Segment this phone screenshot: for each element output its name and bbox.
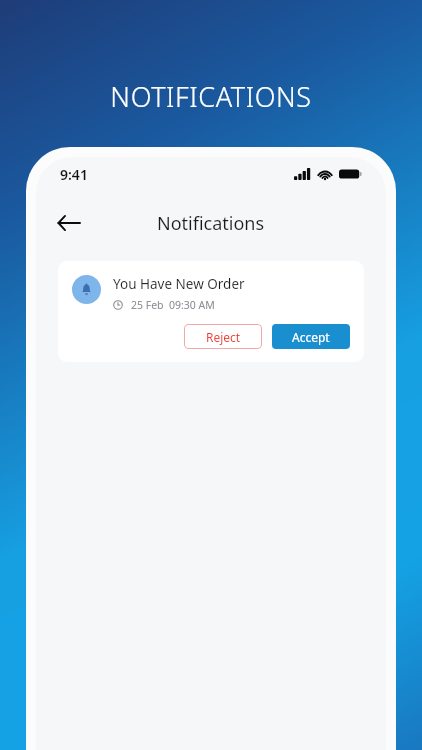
- button[interactable]: Accept: [272, 324, 350, 349]
- staticText: NOTIFICATIONS: [110, 78, 312, 115]
- button[interactable]: You Have New Order: [58, 261, 364, 362]
- staticText: Notifications: [157, 211, 265, 236]
- button[interactable]: Reject: [184, 324, 262, 349]
- staticText: 9:41: [60, 165, 88, 184]
- staticText: You Have New Order: [113, 275, 245, 293]
- staticText: 25 Feb 09:30 AM: [131, 298, 215, 312]
- staticText: Accept: [292, 329, 330, 345]
- staticText: Reject: [206, 329, 241, 345]
- button[interactable]: Back: [50, 205, 88, 241]
